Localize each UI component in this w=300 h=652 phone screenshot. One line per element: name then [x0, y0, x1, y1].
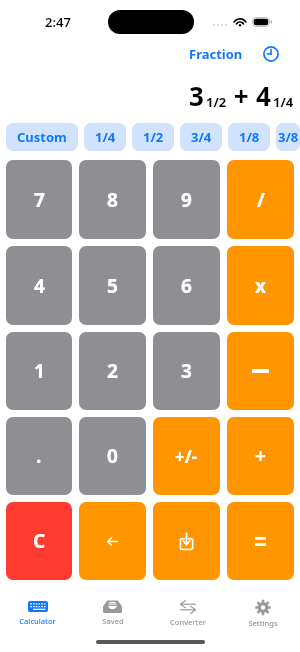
- staticText: 7: [34, 187, 45, 213]
- button[interactable]: 1/4: [84, 123, 126, 151]
- button[interactable]: Fraction: [187, 45, 245, 63]
- staticText: 3/8: [278, 128, 299, 146]
- staticText: Saved: [102, 616, 124, 626]
- button[interactable]: Save: [153, 502, 220, 580]
- button[interactable]: /: [227, 160, 294, 239]
- button[interactable]: Minus: [227, 332, 294, 410]
- button[interactable]: +: [227, 417, 294, 495]
- staticText: +: [227, 78, 256, 113]
- staticText: .: [36, 443, 42, 469]
- staticText: 2:47: [45, 13, 71, 31]
- staticText: 3: [181, 358, 192, 384]
- staticText: 4: [34, 273, 45, 299]
- button[interactable]: 7: [6, 160, 72, 239]
- staticText: 1/2: [143, 128, 164, 146]
- staticText: 3/4: [191, 128, 212, 146]
- button[interactable]: 6: [153, 246, 220, 325]
- staticText: 2: [107, 358, 118, 384]
- button[interactable]: 5: [79, 246, 146, 325]
- staticText: 4: [256, 78, 271, 113]
- button[interactable]: 3/8: [276, 123, 300, 151]
- staticText: 6: [181, 273, 192, 299]
- staticText: Custom: [17, 128, 67, 146]
- button[interactable]: Backspace: [79, 502, 146, 580]
- button[interactable]: Converter: [150, 588, 225, 634]
- staticText: 1/2: [206, 93, 227, 111]
- staticText: +: [255, 443, 266, 469]
- staticText: Converter: [170, 617, 206, 627]
- button[interactable]: Saved: [75, 588, 150, 634]
- button[interactable]: 9: [153, 160, 220, 239]
- staticText: x: [255, 273, 266, 299]
- button[interactable]: 0: [79, 417, 146, 495]
- staticText: 9: [181, 187, 192, 213]
- button[interactable]: Settings: [225, 588, 300, 634]
- staticText: 1: [34, 358, 45, 384]
- staticText: 1/4: [95, 128, 116, 146]
- staticText: Fraction: [189, 45, 243, 63]
- staticText: 5: [107, 273, 118, 299]
- button[interactable]: 8: [79, 160, 146, 239]
- staticText: 8: [107, 187, 118, 213]
- button[interactable]: +/-: [153, 417, 220, 495]
- button[interactable]: Calculator: [0, 588, 75, 634]
- button[interactable]: 2: [79, 332, 146, 410]
- button[interactable]: 3/4: [180, 123, 222, 151]
- staticText: /: [257, 187, 265, 213]
- staticText: 1/8: [239, 128, 260, 146]
- button[interactable]: .: [6, 417, 72, 495]
- button[interactable]: 3: [153, 332, 220, 410]
- button[interactable]: x: [227, 246, 294, 325]
- button[interactable]: Equals: [227, 502, 294, 580]
- staticText: Calculator: [19, 616, 56, 626]
- button[interactable]: 1/8: [228, 123, 270, 151]
- staticText: 0: [107, 443, 118, 469]
- button[interactable]: History: [261, 44, 281, 64]
- staticText: C: [33, 528, 46, 554]
- staticText: 1/4: [273, 93, 294, 111]
- button[interactable]: Custom: [6, 123, 78, 151]
- staticText: Settings: [248, 618, 278, 628]
- button[interactable]: 4: [6, 246, 72, 325]
- staticText: +/-: [175, 445, 198, 468]
- staticText: 3: [189, 78, 204, 113]
- button[interactable]: 1: [6, 332, 72, 410]
- button[interactable]: 1/2: [132, 123, 174, 151]
- button[interactable]: C: [6, 502, 72, 580]
